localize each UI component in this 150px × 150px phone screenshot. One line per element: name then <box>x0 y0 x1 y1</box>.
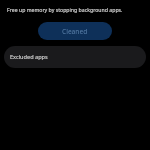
button[interactable]: Cleaned <box>38 22 112 40</box>
staticText: Cleaned <box>62 27 88 36</box>
button[interactable]: Excluded apps <box>4 46 146 68</box>
staticText: Free up memory by stopping background ap… <box>7 6 146 13</box>
staticText: Excluded apps <box>10 53 48 61</box>
